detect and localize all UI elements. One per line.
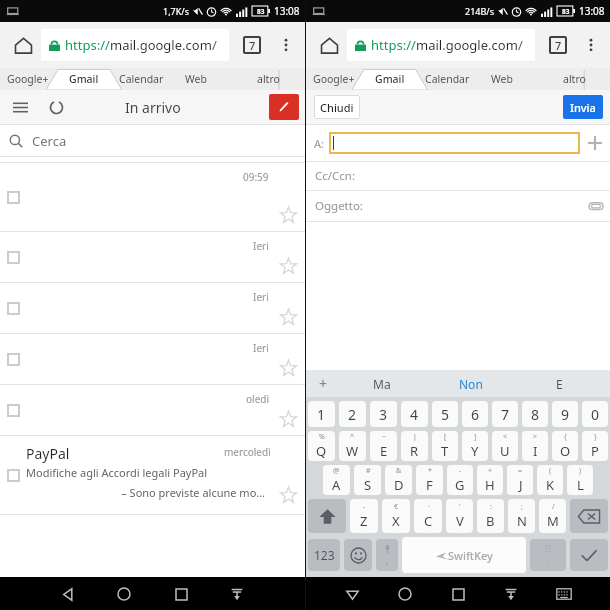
button[interactable]: Select conversation — [0, 385, 305, 436]
button[interactable]: > — [522, 431, 548, 461]
button[interactable]: Enter — [570, 539, 608, 571]
button[interactable]: Refresh — [42, 93, 70, 121]
button[interactable]: 1 — [308, 401, 335, 427]
button[interactable]: Calendar — [112, 68, 170, 90]
button[interactable]: | — [401, 431, 428, 461]
button[interactable]: Home — [314, 30, 344, 60]
button[interactable]: : — [477, 499, 504, 533]
button[interactable]: Back — [337, 579, 367, 609]
button[interactable]: Select conversation — [7, 404, 20, 417]
button[interactable]: = — [507, 465, 533, 495]
button[interactable]: Select conversation — [7, 302, 20, 315]
button[interactable]: https:// — [347, 29, 535, 61]
button[interactable]: Numbers — [308, 539, 340, 571]
button[interactable]: { — [552, 431, 578, 461]
button[interactable]: ; — [508, 499, 535, 533]
button[interactable]: https:// — [41, 29, 229, 61]
button[interactable]: } — [582, 431, 608, 461]
button[interactable]: Select conversation — [0, 232, 305, 283]
button[interactable]: Recent apps — [443, 579, 473, 609]
button[interactable]: Select conversation — [7, 251, 20, 264]
button[interactable]: Tabs — [236, 29, 268, 61]
button[interactable]: Voice input — [376, 539, 398, 571]
button[interactable]: Attach file — [582, 192, 610, 220]
button[interactable]: @ — [323, 465, 350, 495]
button[interactable]: Select conversation — [0, 163, 305, 232]
button[interactable]: More options — [576, 30, 606, 60]
button[interactable]: Star — [277, 306, 299, 328]
button[interactable]: Shift — [308, 499, 346, 533]
button[interactable]: ' — [446, 499, 473, 533]
button[interactable]: Gmail — [362, 68, 418, 90]
button[interactable]: ] — [462, 431, 488, 461]
button[interactable]: Google+ — [0, 68, 56, 90]
button[interactable]: Select conversation — [0, 436, 305, 514]
button[interactable]: Ma — [338, 370, 426, 397]
button[interactable]: 7 — [492, 401, 518, 427]
button[interactable]: Cerca — [0, 125, 305, 156]
button[interactable]: Menu — [6, 93, 34, 121]
button[interactable]: Select conversation — [0, 283, 305, 334]
button[interactable]: Select conversation — [0, 334, 305, 385]
button[interactable]: & — [385, 465, 412, 495]
button[interactable]: altro — [554, 68, 594, 90]
button[interactable] — [329, 132, 580, 154]
button[interactable]: - — [350, 499, 378, 533]
button[interactable]: Emoji — [344, 539, 372, 571]
button[interactable]: 5 — [432, 401, 458, 427]
button[interactable]: ~ — [370, 431, 397, 461]
button[interactable]: Select conversation — [7, 469, 20, 482]
button[interactable]: * — [416, 465, 443, 495]
button[interactable]: ^ — [339, 431, 366, 461]
button[interactable]: 9 — [552, 401, 578, 427]
button[interactable]: 0 — [582, 401, 608, 427]
button[interactable]: + — [477, 465, 503, 495]
button[interactable]: Hide navigation bar — [222, 579, 252, 609]
button[interactable]: Invia — [563, 95, 603, 119]
button[interactable]: Chiudi — [314, 95, 360, 119]
button[interactable]: Home — [390, 579, 420, 609]
button[interactable]: Gmail — [56, 68, 112, 90]
button[interactable]: altro — [248, 68, 288, 90]
button[interactable]: < — [492, 431, 518, 461]
button[interactable]: Calendar — [418, 68, 476, 90]
button[interactable]: Switch keyboard — [549, 579, 579, 609]
button[interactable]: Hide navigation bar — [496, 579, 526, 609]
button[interactable]: 3 — [370, 401, 397, 427]
button[interactable]: Star — [277, 204, 299, 226]
button[interactable]: Star — [277, 408, 299, 430]
button[interactable]: / — [539, 499, 566, 533]
button[interactable]: 4 — [401, 401, 428, 427]
button[interactable]: Compose — [269, 94, 299, 120]
button[interactable]: · — [414, 499, 442, 533]
button[interactable]: Select conversation — [7, 191, 20, 204]
button[interactable]: Home — [109, 579, 139, 609]
button[interactable]: [ — [432, 431, 458, 461]
button[interactable]: - — [447, 465, 473, 495]
button[interactable]: E — [515, 370, 604, 397]
button[interactable]: Google+ — [306, 68, 362, 90]
button[interactable]: Web — [476, 68, 528, 90]
button[interactable]: € — [382, 499, 410, 533]
button[interactable]: Delete — [570, 499, 608, 533]
button[interactable]: 2 — [339, 401, 366, 427]
button[interactable]: Star — [277, 255, 299, 277]
button[interactable]: Home — [8, 30, 38, 60]
button[interactable]: % — [308, 431, 335, 461]
button[interactable]: ( — [537, 465, 563, 495]
button[interactable]: Back — [53, 579, 83, 609]
button[interactable]: 6 — [462, 401, 488, 427]
button[interactable]: # — [354, 465, 381, 495]
button[interactable]: Tabs — [542, 29, 574, 61]
button[interactable]: 8 — [522, 401, 548, 427]
button[interactable]: Web — [170, 68, 222, 90]
button[interactable]: Recent apps — [166, 579, 196, 609]
button[interactable]: Cc/Ccn: — [306, 162, 610, 190]
button[interactable]: ) — [567, 465, 593, 495]
button[interactable]: Select conversation — [7, 353, 20, 366]
button[interactable]: Space — [402, 537, 526, 573]
button[interactable]: Star — [277, 484, 299, 506]
button[interactable]: Star — [277, 357, 299, 379]
button[interactable]: Non — [426, 370, 515, 397]
